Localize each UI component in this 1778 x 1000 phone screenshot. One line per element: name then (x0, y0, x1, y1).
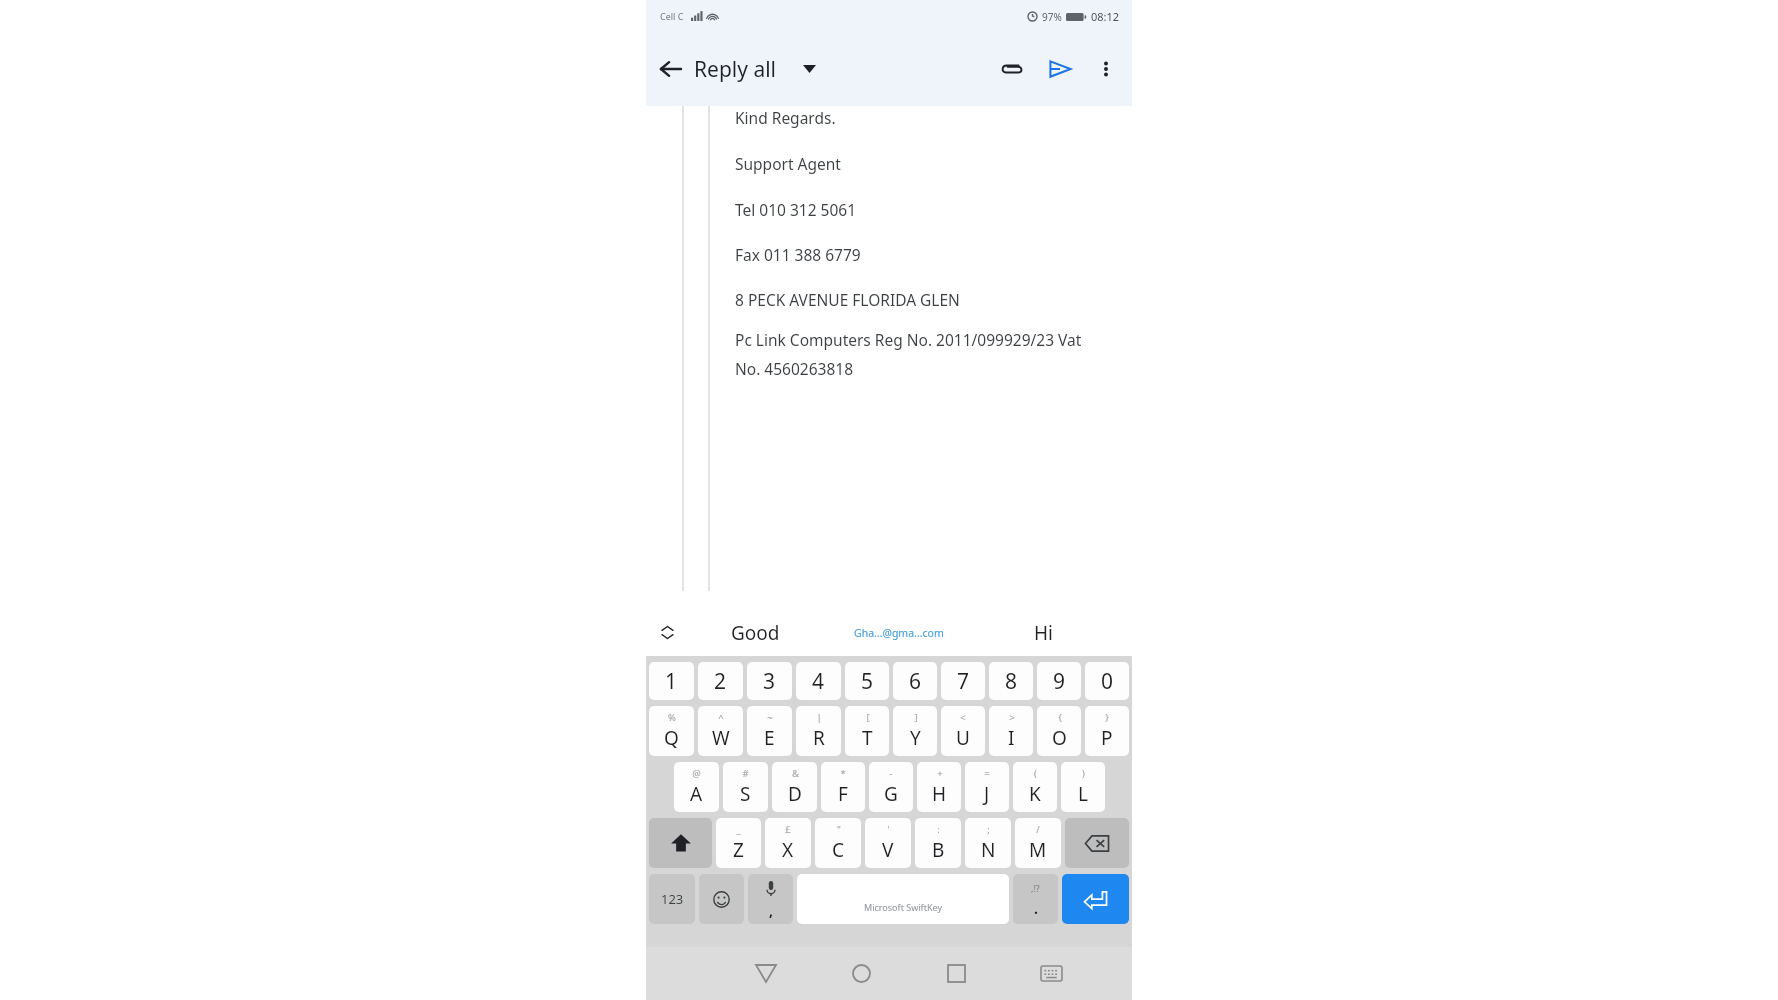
button[interactable]: = (965, 762, 1009, 812)
button[interactable]: Reply all (694, 32, 988, 106)
staticText: & (792, 767, 799, 780)
button[interactable]: Shift (649, 818, 712, 868)
button[interactable]: * (821, 762, 865, 812)
button[interactable]: _ (716, 818, 761, 868)
button[interactable]: 5 (845, 662, 889, 700)
staticText: * (840, 767, 846, 780)
staticText: ( (1034, 767, 1037, 780)
button[interactable]: Microsoft SwiftKey (797, 874, 1009, 924)
staticText: Microsoft SwiftKey (864, 901, 942, 913)
button[interactable]: Back (718, 947, 814, 1000)
button[interactable]: } (1085, 706, 1129, 756)
staticText: S (740, 781, 751, 807)
button[interactable]: ^ (698, 706, 743, 756)
staticText: Fax 011 388 6779 (735, 244, 861, 265)
staticText: H (932, 781, 947, 807)
staticText: 8 (1005, 667, 1018, 696)
staticText: Gha...@gma...com (854, 626, 944, 640)
button[interactable]: Voice input (748, 874, 793, 924)
button[interactable]: Enter (1062, 874, 1129, 924)
button[interactable]: Hide keyboard (1004, 947, 1099, 1000)
staticText: X (782, 837, 794, 863)
staticText: [ (866, 711, 870, 724)
button[interactable]: 9 (1037, 662, 1081, 700)
staticText: 2 (714, 667, 727, 696)
staticText: ) (1082, 767, 1085, 780)
staticText: 9 (1053, 667, 1066, 696)
button[interactable]: Attach (988, 45, 1036, 93)
staticText: Cell C (660, 10, 684, 22)
button[interactable]: Good (688, 609, 822, 656)
button[interactable]: Hi (976, 609, 1110, 656)
staticText: £ (785, 823, 791, 836)
button[interactable]: Recents (909, 947, 1004, 1000)
staticText: . (1034, 899, 1038, 918)
staticText: ,!? (1031, 882, 1040, 894)
button[interactable]: { (1037, 706, 1081, 756)
button[interactable]: + (917, 762, 961, 812)
staticText: D (788, 781, 802, 807)
button[interactable]: £ (765, 818, 811, 868)
button[interactable]: Send (1036, 45, 1084, 93)
staticText: V (882, 837, 894, 863)
button[interactable]: ,!? (1013, 874, 1058, 924)
staticText: } (1105, 711, 1109, 724)
staticText: 8 PECK AVENUE FLORIDA GLEN (735, 289, 960, 310)
staticText: Pc Link Computers Reg No. 2011/099929/23… (735, 329, 1106, 379)
button[interactable]: 2 (698, 662, 743, 700)
staticText: 1 (665, 667, 678, 696)
button[interactable]: 0 (1085, 662, 1129, 700)
staticText: O (1052, 725, 1067, 751)
staticText: A (690, 781, 703, 807)
button[interactable]: [ (845, 706, 889, 756)
staticText: + (937, 767, 943, 780)
staticText: 6 (909, 667, 922, 696)
button[interactable]: 123 (649, 874, 695, 924)
staticText: ~ (767, 711, 773, 724)
button[interactable]: ~ (747, 706, 792, 756)
button[interactable]: ] (893, 706, 937, 756)
button[interactable]: Emoji (699, 874, 744, 924)
button[interactable]: - (869, 762, 913, 812)
staticText: ' (887, 823, 890, 836)
button[interactable]: > (989, 706, 1033, 756)
button[interactable]: : (915, 818, 961, 868)
button[interactable]: Gha...@gma...com (822, 609, 976, 656)
button[interactable]: 3 (747, 662, 792, 700)
staticText: F (838, 781, 848, 807)
button[interactable]: Backspace (1065, 818, 1129, 868)
button[interactable]: @ (674, 762, 719, 812)
button[interactable]: ( (1013, 762, 1057, 812)
button[interactable]: 4 (796, 662, 841, 700)
staticText: E (764, 725, 775, 751)
button[interactable]: 8 (989, 662, 1033, 700)
staticText: / (1036, 823, 1040, 836)
staticText: C (832, 837, 845, 863)
staticText: 3 (763, 667, 776, 696)
staticText: 7 (957, 667, 970, 696)
button[interactable]: More options (1084, 47, 1128, 91)
staticText: ; (987, 823, 990, 836)
staticText: - (889, 767, 893, 780)
button[interactable]: | (796, 706, 841, 756)
button[interactable]: Expand suggestions (646, 609, 688, 656)
button[interactable]: 6 (893, 662, 937, 700)
button[interactable]: Home (814, 947, 909, 1000)
staticText: Kind Regards. (735, 107, 836, 128)
button[interactable]: # (723, 762, 768, 812)
staticText: = (984, 767, 990, 780)
button[interactable]: " (815, 818, 861, 868)
button[interactable]: ) (1061, 762, 1105, 812)
button[interactable]: / (1015, 818, 1061, 868)
button[interactable]: % (649, 706, 694, 756)
button[interactable]: Back (646, 45, 694, 93)
button[interactable]: ' (865, 818, 911, 868)
button[interactable]: < (941, 706, 985, 756)
staticText: G (884, 781, 898, 807)
button[interactable]: 7 (941, 662, 985, 700)
button[interactable]: 1 (649, 662, 694, 700)
staticText: 0 (1101, 667, 1114, 696)
staticText: < (960, 711, 966, 724)
button[interactable]: & (772, 762, 817, 812)
button[interactable]: ; (965, 818, 1011, 868)
